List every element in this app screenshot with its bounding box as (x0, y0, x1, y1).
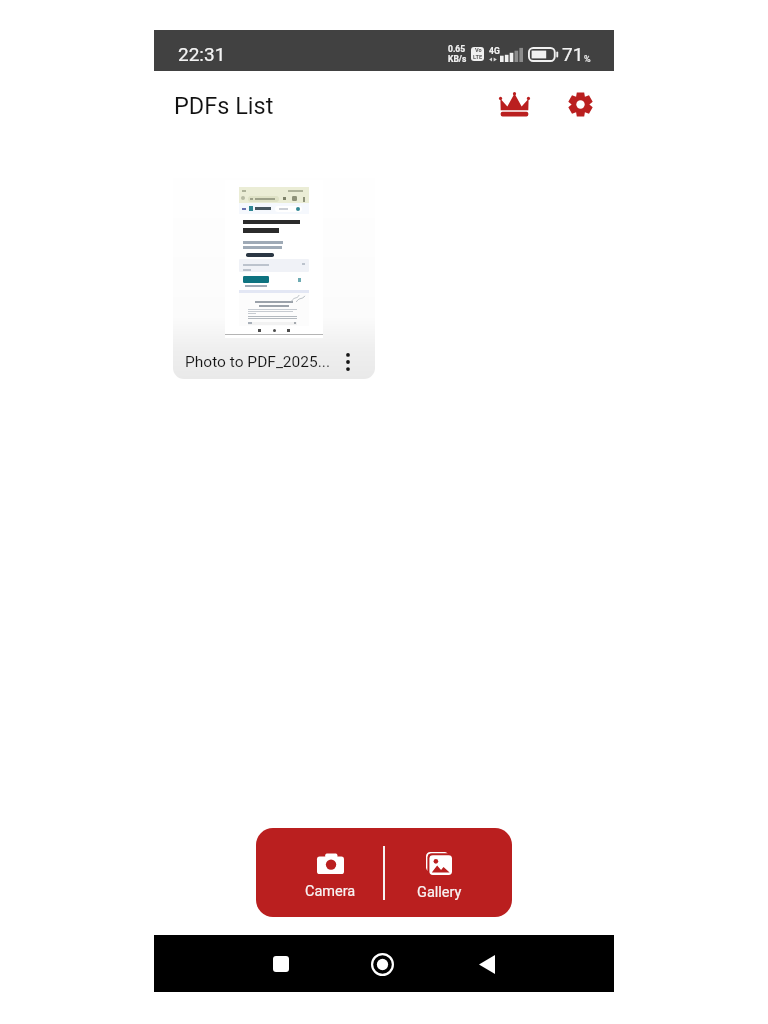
staticText: % (584, 54, 591, 65)
staticText: 0.65 (448, 44, 466, 54)
button[interactable]: Settings (556, 80, 604, 128)
button[interactable]: Gallery (405, 828, 473, 917)
button[interactable]: Home (356, 938, 408, 990)
button[interactable]: Camera (296, 828, 364, 917)
button[interactable]: Recents (255, 938, 307, 990)
staticText: Camera (305, 883, 356, 900)
staticText: Vo (475, 47, 482, 54)
staticText: KB/s (448, 54, 467, 64)
staticText: PDFs List (174, 92, 274, 120)
button[interactable]: Back (461, 938, 513, 990)
staticText: Photo to PDF_2025... (185, 353, 332, 371)
staticText: 4G (489, 46, 500, 56)
button[interactable]: More options (332, 346, 364, 378)
staticText: 22:31 (178, 43, 226, 65)
staticText: Gallery (417, 884, 462, 901)
button[interactable]: Photo to PDF_2025... (173, 158, 375, 379)
button[interactable]: Premium (490, 80, 538, 128)
staticText: LTE (473, 54, 483, 61)
staticText: 71 (562, 43, 584, 65)
